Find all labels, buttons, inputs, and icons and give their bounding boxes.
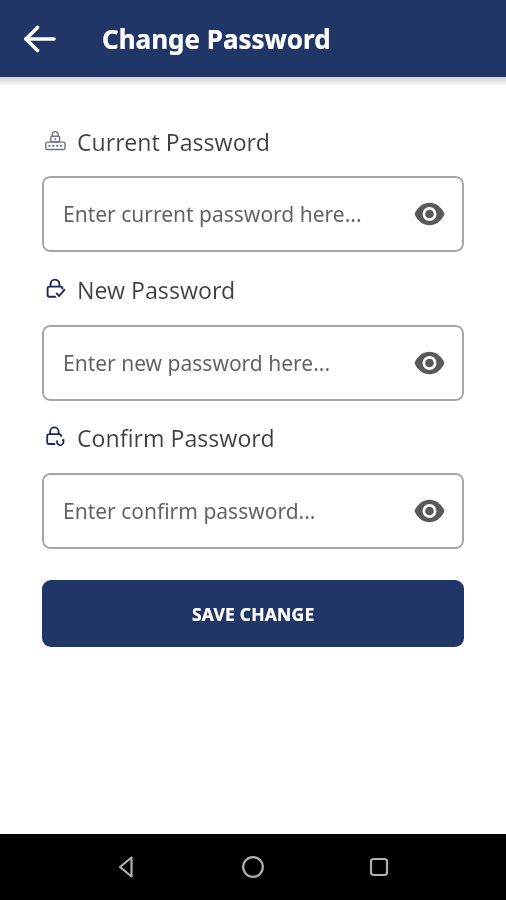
staticText: Enter current password here... — [63, 200, 362, 229]
button[interactable] — [412, 346, 446, 380]
button[interactable] — [103, 843, 151, 891]
button[interactable]: Enter confirm password... — [42, 473, 464, 549]
staticText: Enter new password here... — [63, 349, 331, 378]
button[interactable] — [355, 843, 403, 891]
button[interactable]: SAVE CHANGE — [42, 580, 464, 647]
staticText: SAVE CHANGE — [192, 602, 315, 626]
staticText: New Password — [77, 274, 236, 302]
staticText: Current Password — [77, 126, 270, 154]
button[interactable]: Enter current password here... — [42, 176, 464, 252]
button[interactable] — [412, 197, 446, 231]
staticText: Change Password — [102, 21, 331, 56]
staticText: Confirm Password — [77, 422, 275, 450]
button[interactable] — [229, 843, 277, 891]
button[interactable] — [18, 17, 62, 61]
button[interactable] — [412, 494, 446, 528]
button[interactable]: Enter new password here... — [42, 325, 464, 401]
staticText: Enter confirm password... — [63, 497, 316, 526]
